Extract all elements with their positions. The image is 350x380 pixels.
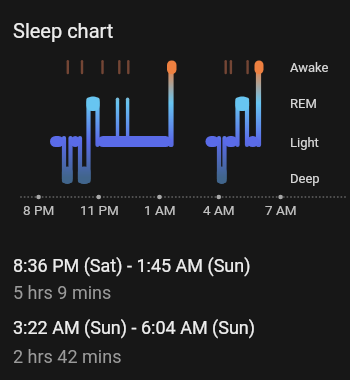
staticText: 2 hrs 42 mins [13, 346, 122, 367]
staticText: 7 AM [265, 202, 297, 218]
staticText: Awake [290, 60, 329, 75]
staticText: Deep [290, 171, 320, 186]
staticText: Light [290, 135, 319, 150]
button[interactable]: 3:22 AM (Sun) - 6:04 AM (Sun) [0, 309, 350, 371]
staticText: 11 PM [80, 202, 119, 218]
staticText: 8:36 PM (Sat) - 1:45 AM (Sun) [13, 255, 251, 276]
staticText: 5 hrs 9 mins [13, 282, 112, 303]
staticText: 1 AM [144, 202, 176, 218]
staticText: REM [290, 96, 317, 111]
staticText: 3:22 AM (Sun) - 6:04 AM (Sun) [13, 317, 256, 338]
staticText: 8 PM [23, 202, 55, 218]
staticText: Sleep chart [13, 19, 114, 42]
staticText: 4 AM [203, 202, 235, 218]
button[interactable]: 8:36 PM (Sat) - 1:45 AM (Sun) [0, 247, 350, 305]
